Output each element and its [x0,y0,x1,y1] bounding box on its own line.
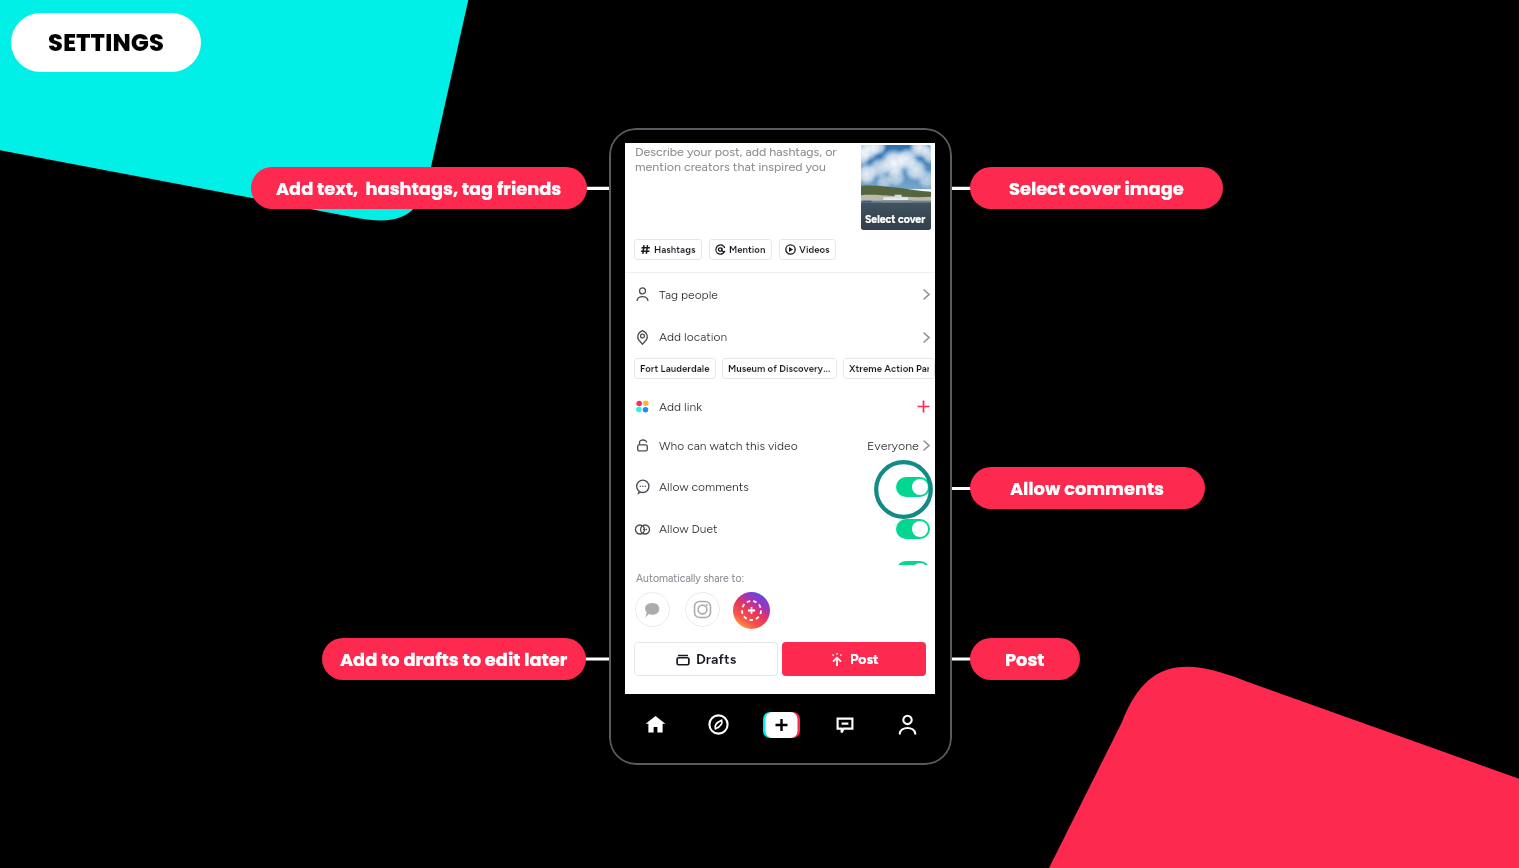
staticText: Allow Duet [659,522,896,536]
button[interactable]: Post [782,642,926,676]
button[interactable]: Drafts [634,642,778,676]
staticText: Xtreme Action Park [849,363,929,375]
staticText: Allow Stitch [659,564,896,578]
staticText: Allow comments [659,480,896,494]
button[interactable]: Videos [779,239,836,260]
button[interactable]: Xtreme Action Park [843,358,935,379]
button[interactable]: Create [763,712,800,738]
button[interactable]: Select cover image [970,167,1223,209]
button[interactable]: Share to Instagram [685,592,720,627]
staticText: Select cover [865,213,926,226]
button[interactable]: Tag people [625,273,935,316]
button[interactable]: Inbox [813,694,876,755]
button[interactable]: Profile [876,694,939,755]
button[interactable]: Discover [687,694,750,755]
staticText: Mention [729,244,766,256]
button[interactable]: Add location [625,316,935,358]
button[interactable]: Museum of Discovery... [722,358,837,379]
staticText: Tag people [659,288,923,302]
staticText: Post [850,651,879,668]
button[interactable]: Home [623,694,687,755]
button[interactable]: Post [970,638,1080,680]
staticText: Add location [659,330,923,344]
staticText: Select cover image [1009,176,1184,201]
staticText: Videos [799,244,830,256]
staticText: Add to drafts to edit later [340,647,568,672]
button[interactable]: Mention [709,239,772,260]
button[interactable]: Hashtags [634,239,702,260]
button[interactable]: Fort Lauderdale [634,358,716,379]
staticText: SETTINGS [48,26,164,60]
staticText: Hashtags [654,244,696,256]
staticText: Add text, hashtags, tag friends [276,176,562,201]
button[interactable]: Share to messages [635,592,670,627]
staticText: Describe your post, add hashtags, or men… [635,144,841,174]
button[interactable]: Add link [625,388,935,425]
staticText: Museum of Discovery... [728,363,831,375]
staticText: Who can watch this video [659,439,867,453]
button[interactable]: Select cover [861,145,931,230]
button[interactable]: More share options [733,592,770,629]
staticText: Allow comments [1010,476,1165,501]
staticText: Drafts [696,651,737,668]
button[interactable]: Who can watch this video [625,425,935,466]
staticText: Fort Lauderdale [640,363,710,375]
button[interactable]: Add text, hashtags, tag friends [251,167,587,209]
button[interactable]: Allow comments [970,467,1205,509]
button[interactable]: Allow Duet [625,508,935,550]
staticText: Add link [659,400,917,414]
button[interactable]: Add to drafts to edit later [322,638,586,680]
staticText: Automatically share to: [636,572,745,585]
staticText: Everyone [867,438,919,453]
button[interactable]: Toggle [896,519,930,539]
button[interactable]: Toggle [896,561,930,581]
button[interactable]: Allow comments [625,466,935,508]
button[interactable]: SETTINGS [11,13,201,72]
button[interactable]: Allow Stitch [625,550,935,592]
button[interactable]: Toggle [896,477,930,497]
staticText: Post [1005,647,1045,672]
